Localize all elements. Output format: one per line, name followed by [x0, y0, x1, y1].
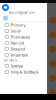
button[interactable]: Social [1, 28, 46, 34]
button[interactable]: Promotions [1, 34, 46, 40]
staticText: Promotions [10, 34, 30, 40]
button[interactable]: Primary [1, 22, 46, 28]
staticText: All labels [4, 59, 17, 62]
staticText: Primary [10, 22, 25, 28]
staticText: Help & feedback [10, 69, 38, 75]
button[interactable]: Important [1, 52, 46, 58]
staticText: Snoozed [10, 46, 24, 52]
button[interactable]: Help & feedback [1, 69, 46, 75]
staticText: Social [10, 28, 20, 34]
staticText: Settings [10, 63, 23, 69]
staticText: Important [10, 52, 27, 58]
staticText: Starred [10, 40, 23, 46]
button[interactable]: Starred [1, 40, 46, 46]
button[interactable]: Snoozed [1, 46, 46, 52]
staticText: account@gmail.com [9, 11, 34, 14]
button[interactable]: Settings [1, 63, 46, 69]
